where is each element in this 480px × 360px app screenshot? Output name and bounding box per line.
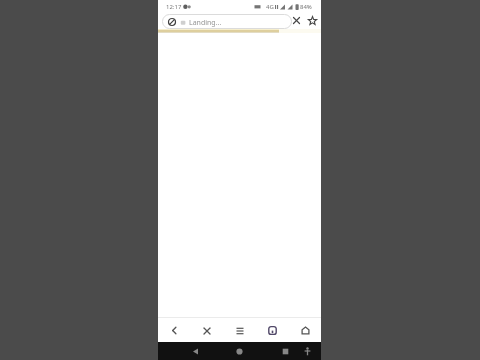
- button[interactable]: [296, 322, 314, 339]
- button[interactable]: [231, 322, 249, 339]
- button[interactable]: [290, 14, 303, 27]
- button[interactable]: [278, 342, 293, 360]
- button[interactable]: [232, 342, 247, 360]
- button[interactable]: Landing…: [162, 14, 292, 29]
- staticText: 12:17: [166, 3, 182, 11]
- staticText: Landing…: [189, 18, 222, 28]
- button[interactable]: [263, 322, 281, 339]
- button[interactable]: [306, 14, 319, 27]
- staticText: 4G: [266, 3, 274, 11]
- button[interactable]: [188, 342, 203, 360]
- button[interactable]: [300, 342, 315, 360]
- staticText: 84%: [300, 3, 312, 11]
- button[interactable]: [165, 322, 183, 339]
- button[interactable]: [198, 322, 216, 339]
